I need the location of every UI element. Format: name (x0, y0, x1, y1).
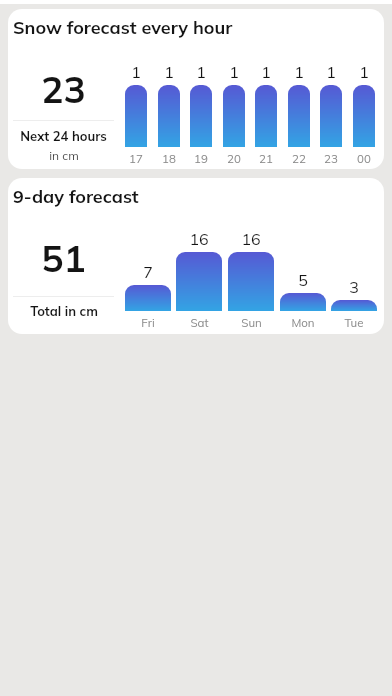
staticText: Fri (141, 315, 155, 329)
staticText: 3 (349, 277, 359, 297)
button[interactable]: 9-day forecast (8, 178, 384, 334)
staticText: Total in cm (30, 303, 98, 319)
staticText: Tue (344, 315, 364, 329)
staticText: Snow forecast every hour (13, 16, 233, 39)
staticText: Mon (291, 315, 315, 329)
staticText: 1 (261, 62, 271, 82)
staticText: 22 (292, 151, 306, 165)
staticText: 51 (41, 235, 86, 281)
staticText: 19 (194, 151, 208, 165)
staticText: 1 (131, 62, 141, 82)
button[interactable]: Snow forecast every hour (8, 9, 384, 169)
staticText: 1 (164, 62, 174, 82)
staticText: 1 (359, 62, 369, 82)
staticText: 23 (324, 151, 338, 165)
staticText: 21 (259, 151, 273, 165)
staticText: Next 24 hours (20, 128, 107, 144)
staticText: 1 (229, 62, 239, 82)
staticText: 1 (326, 62, 336, 82)
staticText: 17 (129, 151, 143, 165)
staticText: 1 (196, 62, 206, 82)
staticText: 7 (143, 262, 153, 282)
staticText: in cm (49, 148, 79, 163)
staticText: 9-day forecast (13, 185, 139, 208)
staticText: 5 (298, 270, 308, 290)
staticText: Sat (190, 315, 209, 329)
staticText: 16 (189, 229, 209, 249)
staticText: 20 (227, 151, 241, 165)
staticText: 00 (357, 151, 371, 165)
staticText: 1 (294, 62, 304, 82)
staticText: 16 (241, 229, 261, 249)
staticText: 18 (162, 151, 176, 165)
staticText: Sun (241, 315, 262, 329)
staticText: 23 (41, 66, 86, 112)
